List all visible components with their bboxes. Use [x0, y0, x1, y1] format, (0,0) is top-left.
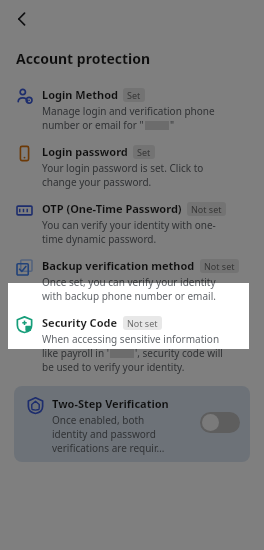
staticText: Not set [191, 203, 222, 215]
staticText: You can verify your identity with one- t… [42, 218, 216, 246]
staticText: Login Method [42, 87, 118, 102]
staticText: ', security code will [135, 346, 223, 360]
staticText: Set [127, 89, 141, 101]
button[interactable]: Login password [0, 138, 264, 195]
button[interactable]: Backup verification method [0, 252, 264, 309]
staticText: Not set [204, 260, 235, 272]
staticText: Backup verification method [42, 258, 195, 273]
staticText: Set [137, 146, 151, 158]
staticText: Once set, you can verify your identity w… [42, 275, 216, 303]
staticText: Your login password is set. Click to cha… [42, 161, 204, 189]
button[interactable]: OTP (One-Time Password) [0, 195, 264, 252]
staticText: Login password [42, 144, 128, 159]
staticText: be used to verify your identity. [42, 360, 185, 374]
staticText: Security Code [42, 315, 118, 330]
staticText: Once enabled, both identity and password… [52, 413, 165, 455]
button[interactable]: Login Method [0, 81, 264, 138]
staticText: Manage login and verification phone [42, 104, 215, 118]
staticText: Account protection [16, 49, 151, 68]
button[interactable]: Two-Step Verification toggle [200, 412, 240, 433]
staticText: number or email for " [42, 118, 144, 132]
staticText: Not set [127, 317, 158, 329]
staticText: Two-Step Verification [52, 396, 169, 411]
button[interactable]: Two-Step Verification [14, 386, 250, 462]
staticText: " [170, 118, 175, 132]
staticText: like payroll in ' [42, 346, 109, 360]
button[interactable]: Security Code [0, 309, 264, 380]
button[interactable]: Back [6, 3, 38, 35]
staticText: OTP (One-Time Password) [42, 201, 182, 216]
staticText: When accessing sensitive information [42, 332, 220, 346]
